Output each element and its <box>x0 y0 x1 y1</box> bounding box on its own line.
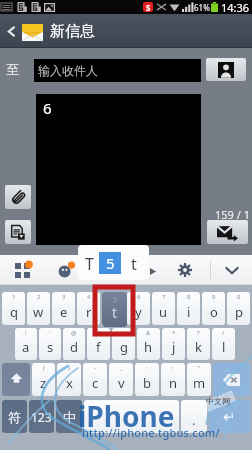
button[interactable]: 输入收件人 <box>34 59 201 82</box>
staticText: n <box>169 374 178 392</box>
button[interactable]: 9 <box>202 292 225 325</box>
button[interactable]: 0 <box>227 292 250 325</box>
staticText: y <box>135 303 142 321</box>
staticText: / <box>222 329 225 337</box>
staticText: 6 <box>43 98 52 118</box>
staticText: 新信息 <box>50 22 95 41</box>
button[interactable]: Language <box>56 400 82 433</box>
button[interactable]: Pick contact <box>206 58 246 81</box>
staticText: 5 <box>112 293 116 301</box>
button[interactable]: 3 <box>52 292 75 325</box>
button[interactable]: 6 <box>127 292 150 325</box>
staticText: S <box>146 2 151 12</box>
staticText: 9 <box>212 293 216 301</box>
button[interactable]: % <box>112 328 135 360</box>
button[interactable]: & <box>137 328 160 360</box>
staticText: _ <box>120 364 123 372</box>
staticText: l <box>222 338 226 356</box>
button[interactable]: Back <box>0 14 22 48</box>
staticText: # <box>97 329 101 337</box>
button[interactable]: * <box>162 328 185 360</box>
button[interactable]: " <box>187 363 211 396</box>
button[interactable]: : <box>135 363 159 396</box>
staticText: 8 <box>187 293 191 301</box>
button[interactable]: 5 <box>102 292 125 325</box>
staticText: x <box>66 374 73 392</box>
staticText: s <box>47 338 54 356</box>
button[interactable]: ( <box>32 363 55 396</box>
button[interactable]: ; <box>161 363 185 396</box>
button[interactable] <box>84 400 179 433</box>
staticText: 中 <box>63 409 76 425</box>
button[interactable]: 6 <box>36 94 201 245</box>
button[interactable]: Apps <box>3 255 41 285</box>
staticText: ! <box>25 329 27 337</box>
button[interactable]: 4 <box>77 292 100 325</box>
button[interactable]: . <box>181 400 207 433</box>
staticText: ? <box>197 329 200 337</box>
staticText: 6 <box>137 293 141 301</box>
staticText: " <box>198 364 201 372</box>
button[interactable]: ' <box>39 328 61 360</box>
button[interactable]: Hide keyboard <box>211 255 252 285</box>
button[interactable]: Enter <box>209 400 250 433</box>
staticText: i <box>187 303 191 321</box>
button[interactable]: # <box>87 328 110 360</box>
button[interactable]: Templates <box>5 220 31 244</box>
staticText: g <box>120 338 128 356</box>
staticText: 3 <box>62 293 66 301</box>
staticText: t <box>131 253 137 275</box>
staticText: 0 <box>237 293 241 301</box>
staticText: 1 <box>12 293 16 301</box>
staticText: r <box>86 303 92 321</box>
staticText: - <box>94 364 96 372</box>
button[interactable]: 5 <box>103 292 127 327</box>
button[interactable]: 2 <box>27 292 50 325</box>
button[interactable]: _ <box>109 363 133 396</box>
staticText: http://iphone.tgbus.com/ <box>82 425 220 440</box>
staticText: 5 <box>113 295 118 305</box>
staticText: m <box>193 374 206 392</box>
button[interactable]: Settings <box>160 255 210 285</box>
button[interactable]: 7 <box>152 292 175 325</box>
staticText: @ <box>71 329 77 337</box>
button[interactable]: 1 <box>2 292 25 325</box>
staticText: d <box>70 338 78 356</box>
button[interactable]: T <box>78 245 149 280</box>
staticText: ↵ <box>223 408 236 425</box>
button[interactable]: Shift <box>2 363 30 396</box>
staticText: 14:36 <box>221 0 250 14</box>
staticText: 2 <box>37 293 41 301</box>
button[interactable]: 8 <box>177 292 200 325</box>
staticText: 输入收件人 <box>38 63 98 78</box>
staticText: T <box>85 253 94 275</box>
button[interactable]: - <box>83 363 107 396</box>
staticText: . <box>192 411 196 429</box>
staticText: & <box>146 329 151 337</box>
staticText: f <box>96 338 101 356</box>
staticText: : <box>146 364 148 372</box>
button[interactable]: Backspace <box>213 363 250 396</box>
staticText: w <box>33 303 44 321</box>
staticText: v <box>118 374 125 392</box>
button[interactable]: Send <box>207 220 248 244</box>
staticText: h <box>144 338 153 356</box>
button[interactable]: / <box>212 328 235 360</box>
staticText: 符 <box>8 409 21 425</box>
staticText: p <box>235 303 243 321</box>
button[interactable]: @ <box>63 328 85 360</box>
button[interactable]: ! <box>15 328 37 360</box>
staticText: t <box>111 303 116 321</box>
button[interactable]: Emoji <box>41 255 89 285</box>
button[interactable]: Numbers <box>29 400 54 433</box>
button[interactable]: ) <box>57 363 81 396</box>
staticText: ( <box>43 364 45 372</box>
staticText: 4 <box>87 293 91 301</box>
button[interactable]: Symbols <box>2 400 27 433</box>
staticText: t <box>112 303 118 322</box>
staticText: e <box>60 303 68 321</box>
button[interactable]: ? <box>187 328 210 360</box>
button[interactable]: Attach <box>5 185 31 209</box>
staticText: j <box>172 338 176 356</box>
staticText: 7 <box>162 293 166 301</box>
